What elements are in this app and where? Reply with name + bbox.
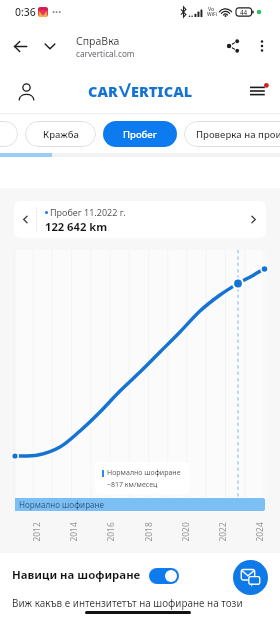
button[interactable]: Share bbox=[218, 31, 248, 61]
staticText: Нормално шофиране bbox=[107, 468, 181, 478]
button[interactable]: More options bbox=[248, 32, 276, 60]
button[interactable]: Previous record bbox=[14, 201, 36, 238]
staticText: 0:36 bbox=[15, 5, 36, 19]
button[interactable]: Проверка на произх bbox=[184, 121, 280, 147]
button[interactable]: Open in browser bbox=[36, 32, 64, 60]
button[interactable]: Next record bbox=[240, 201, 266, 238]
staticText: 2024 bbox=[253, 521, 264, 541]
button[interactable]: Пробег bbox=[103, 121, 177, 147]
button[interactable]: Menu bbox=[244, 77, 272, 105]
staticText: Нормално шофиране bbox=[19, 499, 104, 510]
staticText: ERTICAL bbox=[131, 81, 193, 101]
staticText: 2020 bbox=[179, 521, 190, 541]
staticText: Кражба bbox=[43, 128, 79, 141]
staticText: WiFi bbox=[207, 11, 218, 18]
staticText: carvertical.com bbox=[76, 48, 135, 59]
staticText: Vo bbox=[208, 5, 215, 12]
button[interactable]: Toggle driving habits bbox=[149, 568, 179, 584]
staticText: 44 bbox=[240, 8, 248, 17]
button[interactable]: Кражба bbox=[25, 121, 96, 147]
staticText: CAR bbox=[88, 81, 118, 101]
staticText: Пробег 11.2022 г. bbox=[50, 206, 126, 218]
staticText: 2022 bbox=[216, 521, 227, 541]
button[interactable]: Account bbox=[12, 77, 40, 105]
staticText: ~817 км/месец bbox=[107, 480, 158, 490]
staticText: Навици на шофиране bbox=[12, 567, 141, 583]
staticText: ··· bbox=[52, 4, 62, 19]
staticText: 2014 bbox=[67, 521, 78, 541]
button[interactable]: Contact support bbox=[233, 560, 268, 595]
staticText: 2012 bbox=[30, 521, 41, 541]
staticText: Виж какъв е интензитетът на шофиране на … bbox=[12, 596, 243, 609]
staticText: СпраВка bbox=[76, 34, 120, 48]
button[interactable]: Back bbox=[6, 32, 34, 60]
staticText: 2018 bbox=[142, 521, 153, 541]
staticText: 2016 bbox=[104, 521, 115, 541]
staticText: Пробег bbox=[123, 128, 157, 141]
staticText: 122 642 km bbox=[45, 219, 108, 234]
staticText: Проверка на произх bbox=[196, 128, 280, 141]
